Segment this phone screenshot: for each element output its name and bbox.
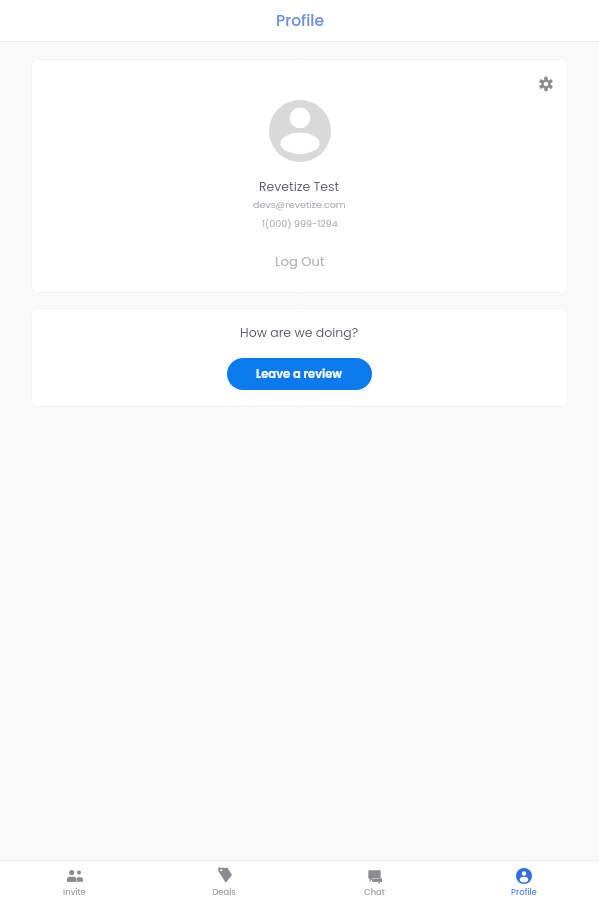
button[interactable]: Deals	[149, 861, 299, 900]
button[interactable]: Chat	[299, 861, 449, 900]
staticText: devs@revetize.com	[253, 198, 346, 211]
button[interactable]: Profile	[449, 861, 599, 900]
staticText: Log Out	[275, 252, 325, 270]
staticText: How are we doing?	[240, 324, 359, 341]
staticText: 1(000) 999-1294	[262, 217, 338, 230]
staticText: Invite	[63, 886, 86, 898]
staticText: Revetize Test	[259, 178, 340, 195]
button[interactable]: Settings	[524, 59, 568, 106]
button[interactable]: Log Out	[253, 247, 347, 275]
staticText: Chat	[364, 886, 385, 898]
staticText: Profile	[511, 886, 537, 898]
button[interactable]: Leave a review	[227, 358, 372, 390]
button[interactable]: Invite	[0, 861, 149, 900]
staticText: Leave a review	[256, 366, 343, 382]
staticText: Deals	[212, 886, 236, 898]
staticText: Profile	[276, 10, 324, 32]
